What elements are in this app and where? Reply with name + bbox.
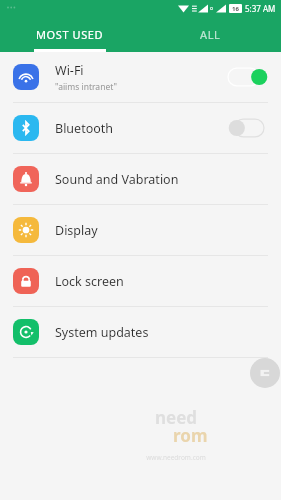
staticText: Lock screen	[55, 273, 124, 290]
staticText: www.needrom.com	[146, 453, 206, 462]
staticText: 16	[232, 5, 239, 13]
button[interactable]: Wi-Fi	[0, 52, 281, 102]
staticText: Bluetooth	[55, 120, 114, 137]
staticText: System updates	[55, 324, 149, 341]
button[interactable]: ALL	[140, 16, 281, 52]
button[interactable]: Sound and Vabration	[0, 154, 281, 204]
button[interactable]: Wi-Fi on	[228, 67, 268, 87]
staticText: MOST USED	[36, 27, 104, 42]
button[interactable]: Bluetooth	[0, 103, 281, 153]
button[interactable]: MOST USED	[0, 16, 140, 52]
staticText: o	[210, 5, 214, 12]
button[interactable]: System updates	[0, 307, 281, 357]
button[interactable]: Display	[0, 205, 281, 255]
staticText: 5:37 AM	[245, 3, 276, 14]
staticText: Display	[55, 222, 98, 239]
button[interactable]: Lock screen	[0, 256, 281, 306]
button[interactable]: Bluetooth off	[228, 118, 268, 138]
staticText: need	[155, 406, 198, 429]
staticText: ALL	[200, 27, 221, 42]
staticText: Wi-Fi	[55, 62, 84, 79]
staticText: rom	[173, 424, 208, 447]
staticText: Sound and Vabration	[55, 171, 179, 188]
button[interactable]: Compose	[250, 358, 280, 388]
staticText: "aiims intranet"	[55, 81, 117, 93]
